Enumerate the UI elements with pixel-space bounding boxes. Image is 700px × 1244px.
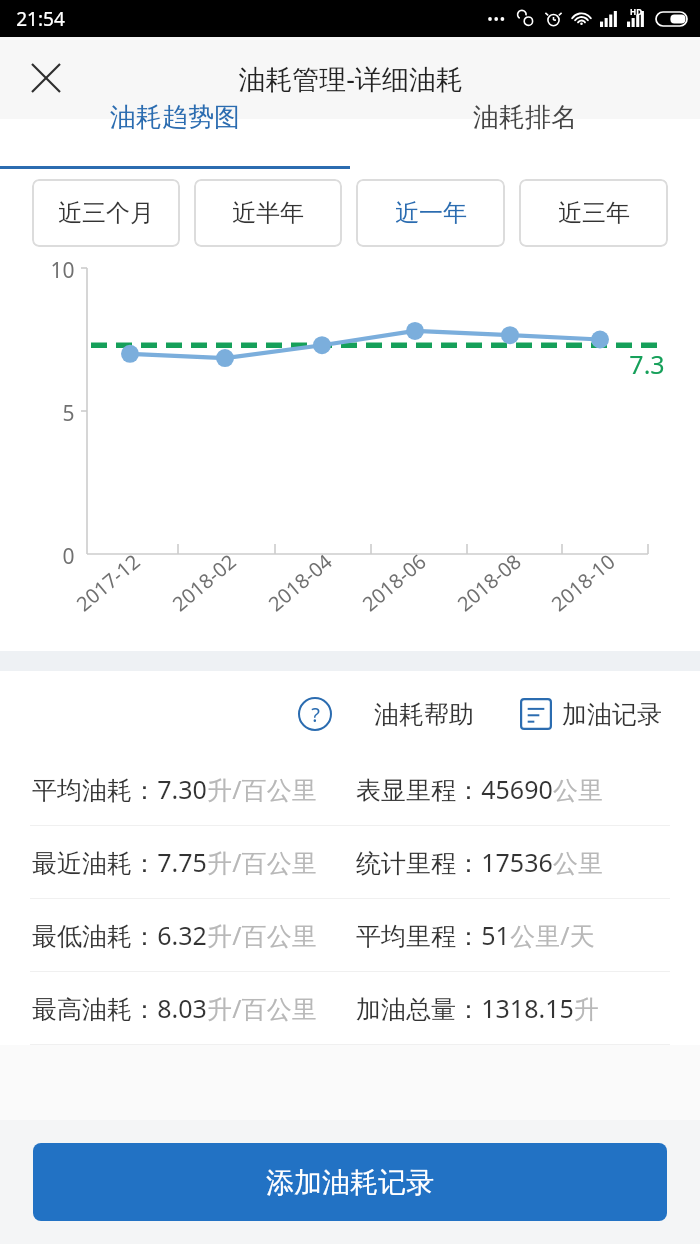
staticText: 45690 xyxy=(481,772,553,806)
staticText: 油耗管理-详细油耗 xyxy=(238,60,463,97)
staticText: 10 xyxy=(50,256,75,285)
button[interactable]: 加油记录 xyxy=(514,692,668,736)
button[interactable]: 最高油耗： xyxy=(0,972,700,1044)
staticText: 近三个月 xyxy=(58,198,154,228)
button[interactable]: 添加油耗记录 xyxy=(33,1143,667,1221)
staticText: 升 xyxy=(574,994,599,1025)
staticText: ? xyxy=(311,701,320,728)
staticText: 添加油耗记录 xyxy=(266,1165,434,1200)
staticText: 2018-02 xyxy=(166,548,242,617)
staticText: 0 xyxy=(62,542,75,571)
button[interactable]: 平均油耗： xyxy=(0,753,700,825)
staticText: 加油记录 xyxy=(562,699,662,730)
staticText: 升/百公里 xyxy=(207,845,317,879)
button[interactable]: 近三年 xyxy=(519,179,668,247)
staticText: 油耗趋势图 xyxy=(110,101,240,134)
staticText: 平均里程： xyxy=(356,921,481,952)
staticText: 加油总量： xyxy=(356,994,481,1025)
staticText: 51 xyxy=(481,918,510,952)
staticText: 最低油耗： xyxy=(32,921,157,952)
button[interactable]: Close xyxy=(20,52,72,104)
staticText: 2018-04 xyxy=(262,548,338,617)
staticText: 平均油耗： xyxy=(32,775,157,806)
button[interactable]: 油耗趋势图 xyxy=(0,119,350,169)
button[interactable]: ? xyxy=(292,691,480,737)
staticText: 统计里程： xyxy=(356,848,481,879)
staticText: 7.3 xyxy=(629,347,665,381)
staticText: 表显里程： xyxy=(356,775,481,806)
staticText: 近半年 xyxy=(232,198,304,228)
staticText: 油耗排名 xyxy=(473,101,577,134)
staticText: 公里 xyxy=(553,775,603,806)
staticText: 2018-10 xyxy=(545,548,621,617)
button[interactable]: 最近油耗： xyxy=(0,826,700,898)
staticText: 近三年 xyxy=(558,198,630,228)
button[interactable]: 油耗排名 xyxy=(350,119,700,169)
staticText: 21:54 xyxy=(16,6,65,32)
button[interactable]: 近半年 xyxy=(194,179,342,247)
staticText: 油耗帮助 xyxy=(374,699,474,730)
staticText: 升/百公里 xyxy=(207,772,317,806)
staticText: 8.03 xyxy=(157,991,207,1025)
staticText: 7.30 xyxy=(157,772,207,806)
staticText: 2018-06 xyxy=(356,548,432,617)
staticText: 7.75 xyxy=(157,845,207,879)
staticText: 2018-08 xyxy=(451,548,527,617)
staticText: 近一年 xyxy=(395,198,467,228)
staticText: 升/百公里 xyxy=(207,918,317,952)
staticText: 6.32 xyxy=(157,918,207,952)
staticText: HD xyxy=(630,6,642,17)
staticText: 公里/天 xyxy=(510,918,595,952)
staticText: 公里 xyxy=(553,848,603,879)
staticText: 1318.15 xyxy=(481,991,574,1025)
button[interactable]: 最低油耗： xyxy=(0,899,700,971)
staticText: 17536 xyxy=(481,845,553,879)
staticText: 5 xyxy=(62,399,75,428)
staticText: 2017-12 xyxy=(70,548,146,617)
staticText: 最近油耗： xyxy=(32,848,157,879)
button[interactable]: 近三个月 xyxy=(32,179,180,247)
staticText: 最高油耗： xyxy=(32,994,157,1025)
button[interactable]: 近一年 xyxy=(356,179,505,247)
staticText: 升/百公里 xyxy=(207,991,317,1025)
